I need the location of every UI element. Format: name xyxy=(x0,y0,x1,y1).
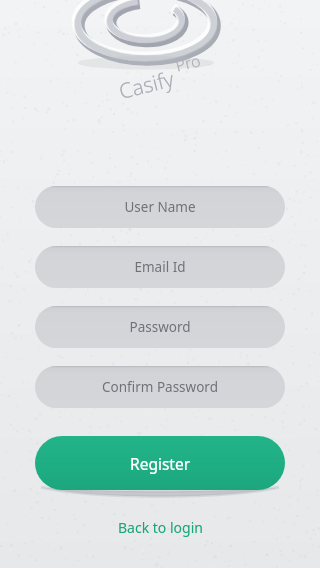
staticText: Back to login xyxy=(118,518,203,537)
staticText: Confirm Password xyxy=(102,378,218,396)
button[interactable]: Password xyxy=(35,306,285,348)
button[interactable]: Register xyxy=(35,436,285,490)
button[interactable]: Confirm Password xyxy=(35,366,285,408)
staticText: Casify xyxy=(116,64,177,106)
staticText: Email Id xyxy=(134,258,186,276)
staticText: Pro xyxy=(173,49,203,77)
staticText: User Name xyxy=(124,198,196,216)
staticText: Register xyxy=(130,453,191,474)
staticText: Password xyxy=(129,318,191,336)
other: Casify Pro logo xyxy=(72,0,220,70)
button[interactable]: Email Id xyxy=(35,246,285,288)
button[interactable]: Back to login xyxy=(0,514,320,540)
button[interactable]: User Name xyxy=(35,186,285,228)
